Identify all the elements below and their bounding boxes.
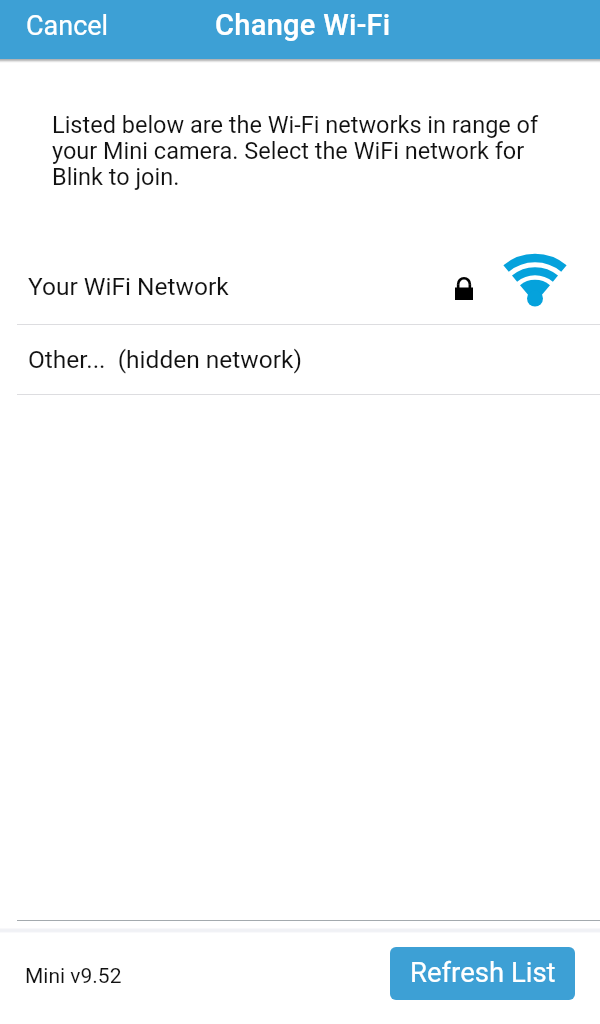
staticText: Refresh List [410,956,556,988]
button[interactable]: Cancel [0,0,135,55]
staticText: Change Wi-Fi [215,8,391,42]
staticText: Listed below are the Wi-Fi networks in r… [52,111,552,191]
staticText: Cancel [26,10,109,42]
button[interactable]: Refresh List [390,947,575,1000]
staticText: Mini v9.52 [25,964,122,989]
staticText: Your WiFi Network [28,272,229,301]
button[interactable]: Your WiFi Network [0,248,600,324]
staticText: Other... (hidden network) [28,345,302,374]
button[interactable]: Other... (hidden network) [0,325,600,394]
other: Secured network [455,277,473,300]
other: Wi-Fi signal strength [503,254,567,306]
